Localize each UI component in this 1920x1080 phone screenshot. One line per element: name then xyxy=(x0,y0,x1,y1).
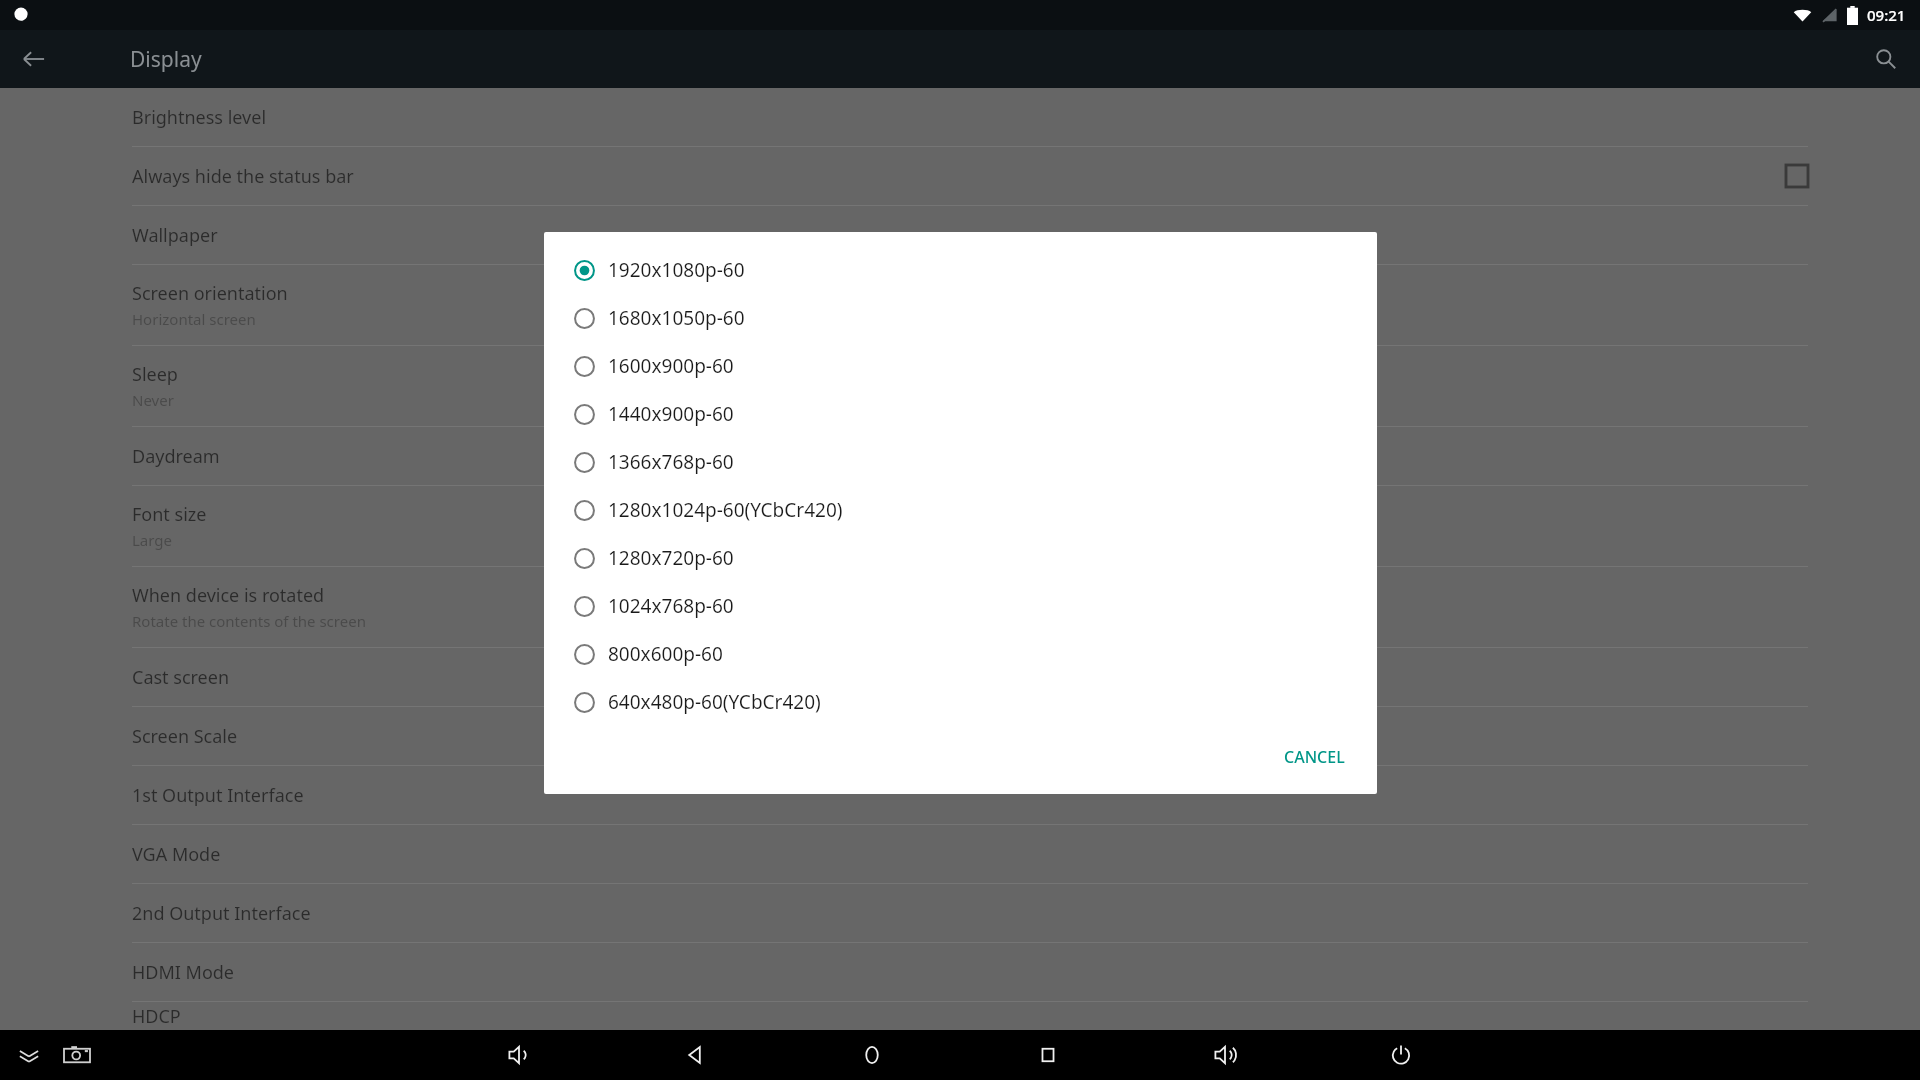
button[interactable]: Hide navigation bar xyxy=(6,1032,52,1078)
button[interactable]: Brightness level xyxy=(0,88,1920,146)
button[interactable]: Back xyxy=(8,33,60,85)
staticText: Screen orientation xyxy=(132,281,288,306)
button[interactable]: Screen orientation xyxy=(0,265,1920,345)
button[interactable]: Volume down xyxy=(496,1032,542,1078)
staticText: Font size xyxy=(132,502,207,527)
button[interactable]: Home xyxy=(849,1032,895,1078)
button[interactable]: 1024x768p-60 xyxy=(544,582,1377,630)
staticText: 640x480p-60(YCbCr420) xyxy=(608,689,821,715)
staticText: HDCP xyxy=(132,1004,181,1029)
button[interactable]: 640x480p-60(YCbCr420) xyxy=(544,678,1377,726)
button[interactable]: Search xyxy=(1860,33,1912,85)
staticText: 09:21 xyxy=(1867,5,1906,25)
staticText: Sleep xyxy=(132,362,178,387)
staticText: 800x600p-60 xyxy=(608,641,723,667)
button[interactable]: 1920x1080p-60 xyxy=(544,246,1377,294)
button[interactable]: 1280x720p-60 xyxy=(544,534,1377,582)
staticText: 1680x1050p-60 xyxy=(608,305,745,331)
button[interactable]: Power xyxy=(1378,1032,1424,1078)
button[interactable]: Cast screen xyxy=(0,648,1920,706)
staticText: 1440x900p-60 xyxy=(608,401,734,427)
button[interactable]: Daydream xyxy=(0,427,1920,485)
button[interactable]: Recents xyxy=(1025,1032,1071,1078)
button[interactable]: 1st Output Interface xyxy=(0,766,1920,824)
button[interactable]: Back xyxy=(672,1032,718,1078)
staticText: Never xyxy=(132,390,174,410)
staticText: HDMI Mode xyxy=(132,960,235,985)
staticText: 1024x768p-60 xyxy=(608,593,734,619)
staticText: When device is rotated xyxy=(132,583,325,608)
staticText: Brightness level xyxy=(132,105,267,130)
button[interactable]: Screen Scale xyxy=(0,707,1920,765)
button[interactable]: Always hide the status bar xyxy=(0,147,1920,205)
staticText: Cast screen xyxy=(132,665,230,690)
staticText: Rotate the contents of the screen xyxy=(132,611,366,631)
staticText: Large xyxy=(132,530,173,550)
button[interactable]: CANCEL xyxy=(1270,736,1359,778)
staticText: Screen Scale xyxy=(132,724,238,749)
staticText: 1280x1024p-60(YCbCr420) xyxy=(608,497,843,523)
button[interactable]: Sleep xyxy=(0,346,1920,426)
button[interactable]: 2nd Output Interface xyxy=(0,884,1920,942)
staticText: 1280x720p-60 xyxy=(608,545,734,571)
button[interactable]: 1600x900p-60 xyxy=(544,342,1377,390)
button[interactable]: 1280x1024p-60(YCbCr420) xyxy=(544,486,1377,534)
button[interactable]: 1366x768p-60 xyxy=(544,438,1377,486)
button[interactable]: Font size xyxy=(0,486,1920,566)
staticText: Always hide the status bar xyxy=(132,164,354,189)
staticText: 1600x900p-60 xyxy=(608,353,734,379)
button[interactable]: Volume up xyxy=(1202,1032,1248,1078)
button[interactable]: When device is rotated xyxy=(0,567,1920,647)
staticText: Display xyxy=(130,45,202,74)
button[interactable]: Wallpaper xyxy=(0,206,1920,264)
button[interactable]: 800x600p-60 xyxy=(544,630,1377,678)
staticText: Wallpaper xyxy=(132,223,218,248)
staticText: Daydream xyxy=(132,444,220,469)
staticText: 1366x768p-60 xyxy=(608,449,734,475)
staticText: CANCEL xyxy=(1284,746,1345,768)
staticText: 2nd Output Interface xyxy=(132,901,311,926)
button[interactable]: 1680x1050p-60 xyxy=(544,294,1377,342)
button[interactable]: 1440x900p-60 xyxy=(544,390,1377,438)
staticText: Horizontal screen xyxy=(132,309,256,329)
staticText: VGA Mode xyxy=(132,842,221,867)
staticText: 1920x1080p-60 xyxy=(608,257,745,283)
staticText: 1st Output Interface xyxy=(132,783,304,808)
button[interactable]: Screenshot xyxy=(54,1032,100,1078)
